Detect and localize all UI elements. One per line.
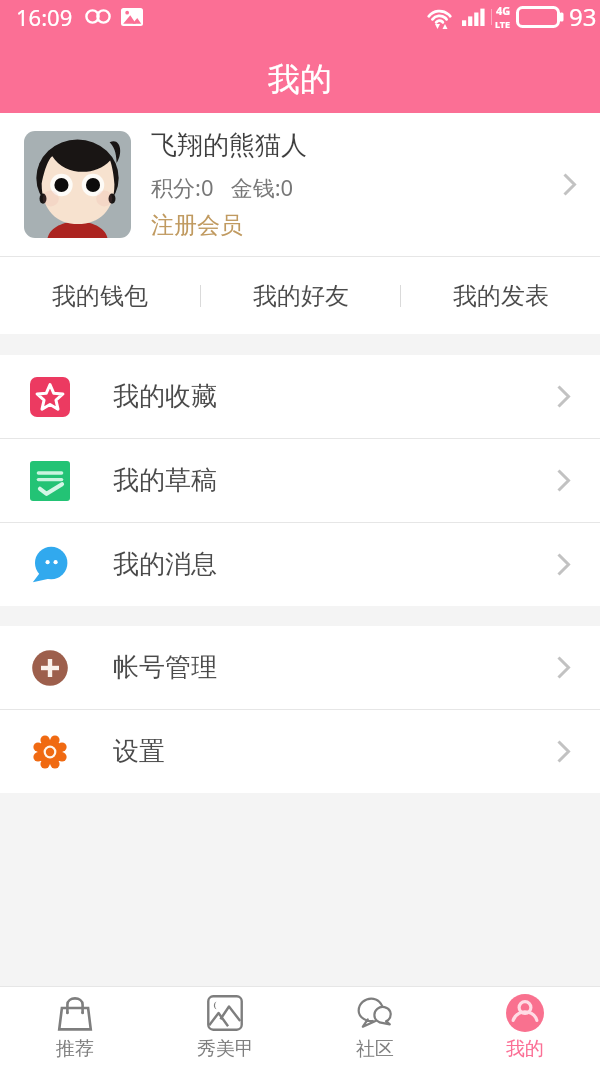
- staticText: 注册会员: [151, 211, 243, 240]
- staticText: 积分:0 金钱:0: [151, 172, 294, 202]
- staticText: 我的发表: [453, 281, 549, 311]
- button[interactable]: 设置: [0, 710, 600, 793]
- staticText: 我的: [506, 1037, 544, 1061]
- staticText: 我的消息: [113, 548, 217, 581]
- staticText: LTE: [495, 18, 511, 30]
- button[interactable]: 飞翔的熊猫人: [0, 113, 600, 256]
- staticText: 4G: [496, 3, 511, 18]
- staticText: 我的钱包: [52, 281, 148, 311]
- button[interactable]: 我的: [450, 987, 600, 1067]
- staticText: 社区: [356, 1037, 394, 1061]
- staticText: 我的: [268, 59, 332, 99]
- button[interactable]: 我的草稿: [0, 439, 600, 522]
- staticText: 我的收藏: [113, 380, 217, 413]
- staticText: 我的好友: [253, 281, 349, 311]
- button[interactable]: 我的发表: [401, 257, 600, 334]
- staticText: 帐号管理: [113, 651, 217, 684]
- button[interactable]: 帐号管理: [0, 626, 600, 709]
- button[interactable]: 我的钱包: [0, 257, 200, 334]
- button[interactable]: 推荐: [0, 987, 150, 1067]
- staticText: 推荐: [56, 1037, 94, 1061]
- staticText: 16:09: [16, 2, 73, 32]
- button[interactable]: 秀美甲: [150, 987, 300, 1067]
- button[interactable]: 社区: [300, 987, 450, 1067]
- button[interactable]: 我的消息: [0, 523, 600, 606]
- staticText: 93: [569, 0, 597, 33]
- staticText: 我的草稿: [113, 464, 217, 497]
- staticText: 飞翔的熊猫人: [151, 129, 307, 162]
- button[interactable]: 我的收藏: [0, 355, 600, 438]
- staticText: 秀美甲: [197, 1037, 254, 1061]
- button[interactable]: 我的好友: [201, 257, 400, 334]
- staticText: 设置: [113, 735, 165, 768]
